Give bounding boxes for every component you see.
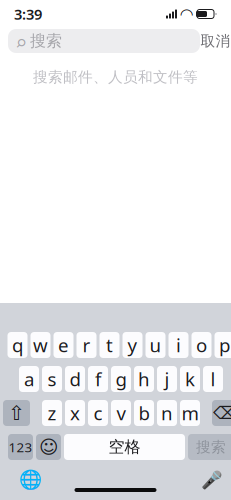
button[interactable]: n bbox=[157, 400, 177, 426]
button[interactable]: f bbox=[88, 366, 108, 392]
button[interactable]: 空格 bbox=[64, 434, 185, 460]
button[interactable]: j bbox=[157, 366, 177, 392]
button[interactable]: z bbox=[42, 400, 62, 426]
staticText: j bbox=[164, 367, 169, 391]
staticText: 🎤 bbox=[200, 470, 222, 490]
button[interactable]: g bbox=[111, 366, 131, 392]
staticText: g bbox=[115, 367, 126, 391]
button[interactable]: Next keyboard bbox=[19, 469, 41, 491]
button[interactable]: x bbox=[65, 400, 85, 426]
staticText: q bbox=[12, 333, 23, 357]
button[interactable]: k bbox=[180, 366, 200, 392]
button[interactable]: Shift bbox=[3, 400, 30, 426]
button[interactable]: p bbox=[214, 332, 231, 358]
staticText: 3:39 bbox=[14, 4, 42, 24]
staticText: ⇧ bbox=[8, 402, 25, 424]
staticText: 搜索 bbox=[30, 31, 62, 51]
staticText: ☺ bbox=[39, 436, 58, 458]
staticText: 🌐 bbox=[19, 469, 42, 491]
button[interactable]: r bbox=[76, 332, 96, 358]
staticText: d bbox=[69, 367, 80, 391]
button[interactable]: 123 bbox=[8, 434, 33, 460]
button[interactable]: e bbox=[53, 332, 73, 358]
staticText: y bbox=[127, 333, 137, 357]
button[interactable]: l bbox=[203, 366, 223, 392]
staticText: 搜索邮件、人员和文件等 bbox=[33, 68, 198, 86]
staticText: o bbox=[196, 333, 207, 357]
button[interactable]: b bbox=[134, 400, 154, 426]
staticText: ⌕ bbox=[16, 25, 26, 57]
staticText: k bbox=[185, 367, 195, 391]
button[interactable]: a bbox=[19, 366, 39, 392]
staticText: a bbox=[24, 367, 34, 391]
staticText: ⌫ bbox=[213, 403, 231, 423]
staticText: 搜索 bbox=[196, 438, 226, 456]
staticText: 123 bbox=[8, 438, 32, 456]
staticText: 空格 bbox=[108, 437, 140, 457]
staticText: r bbox=[82, 333, 90, 357]
button[interactable]: Emoji bbox=[36, 434, 61, 460]
staticText: x bbox=[70, 401, 80, 425]
staticText: e bbox=[58, 333, 69, 357]
button[interactable]: s bbox=[42, 366, 62, 392]
staticText: p bbox=[219, 333, 230, 357]
button[interactable]: w bbox=[30, 332, 50, 358]
staticText: t bbox=[106, 333, 113, 357]
button[interactable]: q bbox=[7, 332, 27, 358]
staticText: u bbox=[149, 333, 161, 357]
staticText: m bbox=[181, 401, 198, 425]
staticText: s bbox=[47, 367, 56, 391]
button[interactable]: h bbox=[134, 366, 154, 392]
button[interactable]: Delete bbox=[212, 400, 231, 426]
staticText: f bbox=[95, 367, 101, 391]
staticText: i bbox=[176, 333, 181, 357]
button[interactable]: 搜索 bbox=[188, 434, 231, 460]
button[interactable]: 取消 bbox=[200, 29, 231, 53]
button[interactable]: o bbox=[191, 332, 211, 358]
staticText: 取消 bbox=[200, 32, 230, 50]
staticText: ◠ bbox=[180, 5, 192, 23]
button[interactable]: m bbox=[180, 400, 200, 426]
button[interactable]: i bbox=[168, 332, 188, 358]
button[interactable]: c bbox=[88, 400, 108, 426]
button[interactable]: d bbox=[65, 366, 85, 392]
staticText: z bbox=[47, 401, 56, 425]
button[interactable]: t bbox=[99, 332, 119, 358]
button[interactable]: Dictate bbox=[200, 469, 222, 491]
staticText: w bbox=[33, 333, 48, 357]
staticText: n bbox=[161, 401, 173, 425]
button[interactable]: v bbox=[111, 400, 131, 426]
button[interactable]: y bbox=[122, 332, 142, 358]
staticText: c bbox=[93, 401, 102, 425]
staticText: h bbox=[138, 367, 150, 391]
button[interactable]: u bbox=[145, 332, 165, 358]
staticText: b bbox=[138, 401, 149, 425]
staticText: v bbox=[116, 401, 125, 425]
staticText: l bbox=[210, 367, 215, 391]
